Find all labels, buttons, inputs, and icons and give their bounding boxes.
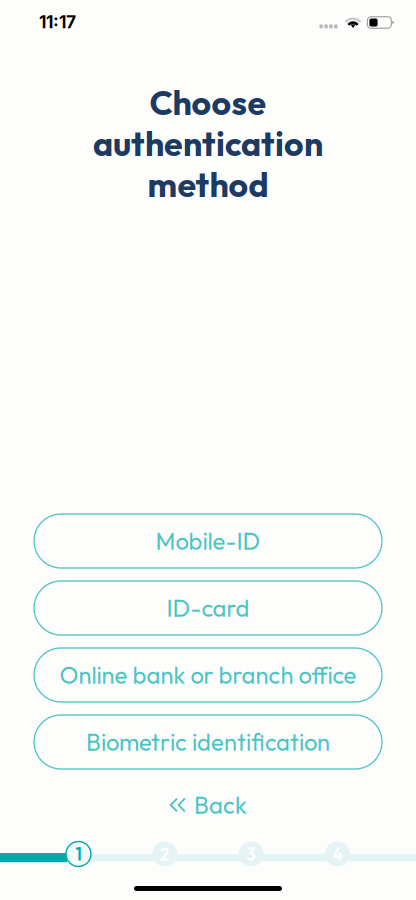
staticText: Online bank or branch office [59, 660, 356, 690]
button[interactable]: Mobile-ID [34, 514, 382, 568]
staticText: 11:17 [39, 11, 76, 32]
staticText: 3 [246, 843, 256, 865]
staticText: Biometric identification [86, 727, 330, 757]
button[interactable]: Back [157, 787, 259, 823]
button[interactable]: ID-card [34, 581, 382, 635]
button[interactable]: Biometric identification [34, 715, 382, 769]
staticText: 2 [160, 843, 170, 865]
staticText: method [147, 163, 268, 206]
button[interactable]: Online bank or branch office [34, 648, 382, 702]
staticText: Back [194, 790, 247, 820]
staticText: ID-card [166, 593, 249, 623]
staticText: 1 [75, 843, 81, 865]
staticText: authentication [93, 122, 323, 165]
staticText: Choose [149, 81, 266, 124]
staticText: 4 [332, 843, 342, 865]
staticText: Mobile-ID [155, 526, 260, 556]
